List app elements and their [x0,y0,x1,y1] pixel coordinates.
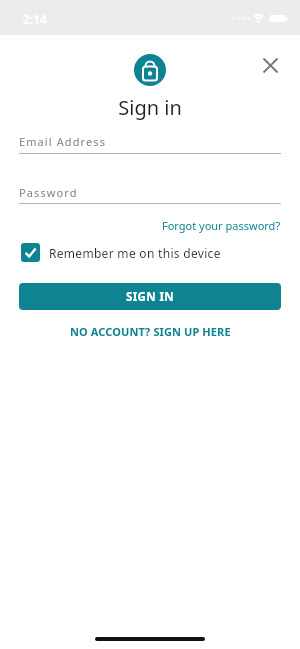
button[interactable] [248,43,292,87]
button[interactable]: Remember me on this device [21,243,221,262]
button[interactable]: NO ACCOUNT? SIGN UP HERE [70,324,231,339]
staticText: Email Address [19,134,107,149]
staticText: Sign in [0,94,300,121]
staticText: Password [19,185,78,200]
button[interactable]: Forgot your password? [162,218,281,233]
staticText: Remember me on this device [49,245,221,261]
button[interactable]: SIGN IN [19,283,281,310]
staticText: SIGN IN [126,289,175,305]
staticText: 2:14 [23,11,47,27]
staticText: NO ACCOUNT? SIGN UP HERE [70,324,231,339]
staticText: Forgot your password? [162,218,281,233]
